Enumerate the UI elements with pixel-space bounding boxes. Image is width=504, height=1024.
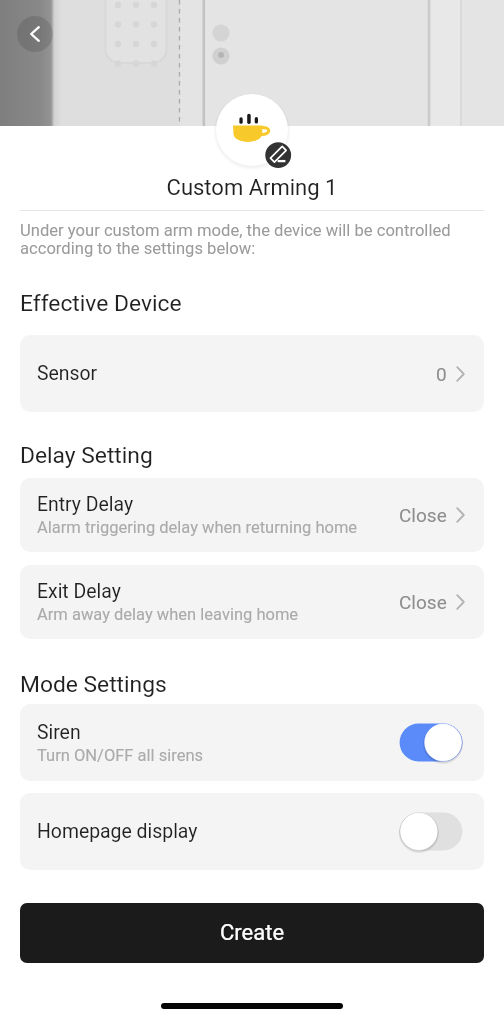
button[interactable]: Exit Delay (20, 565, 484, 639)
staticText: Under your custom arm mode, the device w… (20, 221, 484, 258)
staticText: Create (220, 920, 285, 946)
staticText: Siren (37, 721, 81, 744)
staticText: Homepage display (37, 820, 198, 843)
button[interactable]: Switch off (399, 812, 463, 851)
button[interactable]: Siren (20, 704, 484, 781)
button[interactable]: Homepage display (20, 793, 484, 870)
staticText: Effective Device (20, 290, 182, 317)
button[interactable]: Create (20, 903, 484, 963)
staticText: Close (399, 504, 447, 526)
staticText: Sensor (37, 362, 98, 385)
button[interactable]: Entry Delay (20, 478, 484, 552)
button[interactable]: Switch on (399, 723, 463, 762)
staticText: Exit Delay (37, 580, 121, 603)
staticText: Turn ON/OFF all sirens (37, 746, 204, 765)
staticText: Entry Delay (37, 493, 134, 516)
staticText: Delay Setting (20, 442, 153, 469)
staticText: 0 (436, 363, 447, 385)
button[interactable]: Edit mode icon (212, 90, 292, 170)
staticText: Mode Settings (20, 671, 167, 698)
staticText: Close (399, 591, 447, 613)
staticText: Custom Arming 1 (0, 175, 504, 201)
button[interactable]: Sensor (20, 335, 484, 412)
staticText: Arm away delay when leaving home (37, 605, 299, 624)
button[interactable]: Back (17, 16, 53, 52)
staticText: Alarm triggering delay when returning ho… (37, 518, 358, 537)
